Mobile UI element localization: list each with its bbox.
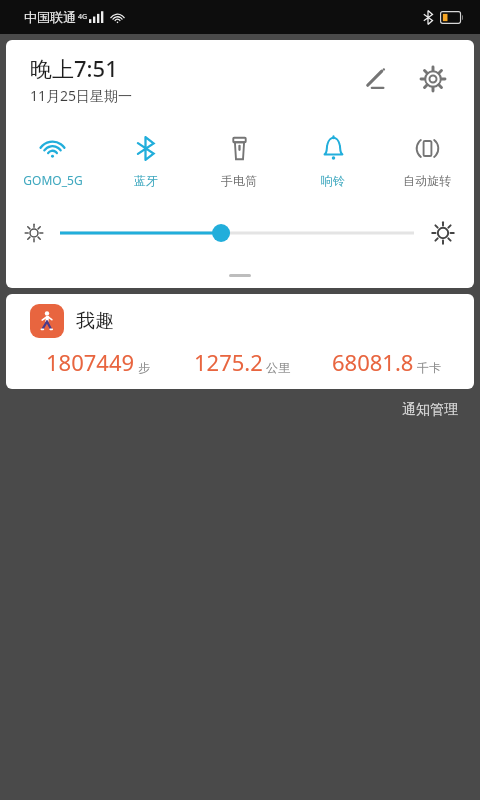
staticText: 11月25日星期一 <box>30 86 133 105</box>
button[interactable]: 自动旋转 <box>380 129 474 194</box>
staticText: 蓝牙 <box>134 173 158 188</box>
staticText: 68081.8 <box>332 347 414 377</box>
staticText: 手电筒 <box>221 173 257 188</box>
button[interactable]: GOMO_5G <box>6 128 99 194</box>
staticText: 晚上7:51 <box>30 53 118 83</box>
staticText: 步 <box>138 360 150 375</box>
staticText: 自动旋转 <box>403 173 451 188</box>
staticText: 公里 <box>266 360 290 375</box>
button[interactable]: 蓝牙 <box>99 129 192 194</box>
button[interactable]: 通知管理 <box>398 397 462 423</box>
staticText: 千卡 <box>417 360 441 375</box>
staticText: 1807449 <box>46 347 135 377</box>
button[interactable]: Edit <box>352 56 398 102</box>
button[interactable]: 手电筒 <box>192 129 286 194</box>
staticText: 我趣 <box>76 309 114 333</box>
button[interactable] <box>60 219 414 247</box>
button[interactable]: 我趣 <box>6 294 474 389</box>
staticText: 响铃 <box>321 173 345 188</box>
button[interactable]: Settings <box>410 56 456 102</box>
staticText: GOMO_5G <box>23 172 83 188</box>
staticText: 1275.2 <box>194 347 263 377</box>
staticText: 中国联通 <box>24 9 76 25</box>
staticText: 通知管理 <box>402 401 458 419</box>
button[interactable]: 响铃 <box>286 129 380 194</box>
staticText: 4G <box>78 12 88 22</box>
